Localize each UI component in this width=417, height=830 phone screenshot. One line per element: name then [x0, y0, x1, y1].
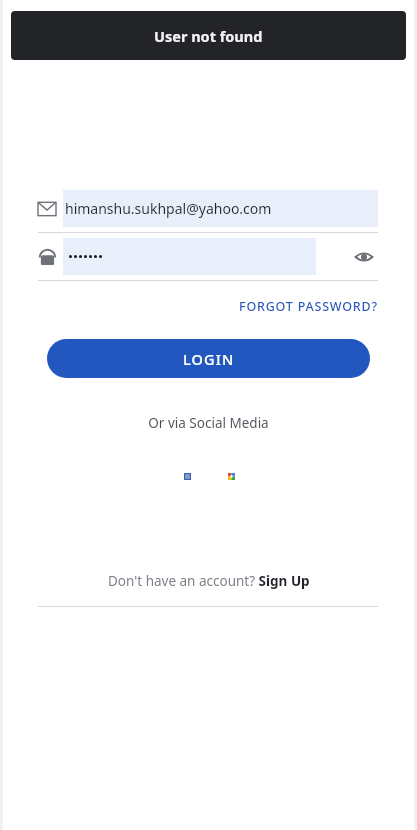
- button[interactable]: Show password: [24, 233, 393, 280]
- button[interactable]: FORGOT PASSWORD?: [235, 295, 382, 318]
- staticText: Don't have an account? Sign Up: [108, 572, 310, 590]
- button[interactable]: Sign in with Facebook: [176, 465, 198, 487]
- staticText: LOGIN: [183, 349, 235, 369]
- button[interactable]: LOGIN: [47, 339, 370, 378]
- staticText: Or via Social Media: [24, 414, 393, 432]
- button[interactable]: Sign in with Google: [220, 465, 242, 487]
- button[interactable]: himanshu.sukhpal@yahoo.com: [24, 185, 393, 232]
- staticText: User not found: [154, 26, 263, 46]
- button[interactable]: Show password: [344, 237, 384, 277]
- button[interactable]: Don't have an account? Sign Up: [102, 570, 316, 592]
- button[interactable]: User not found: [11, 11, 406, 60]
- staticText: himanshu.sukhpal@yahoo.com: [65, 199, 272, 218]
- staticText: FORGOT PASSWORD?: [239, 298, 378, 315]
